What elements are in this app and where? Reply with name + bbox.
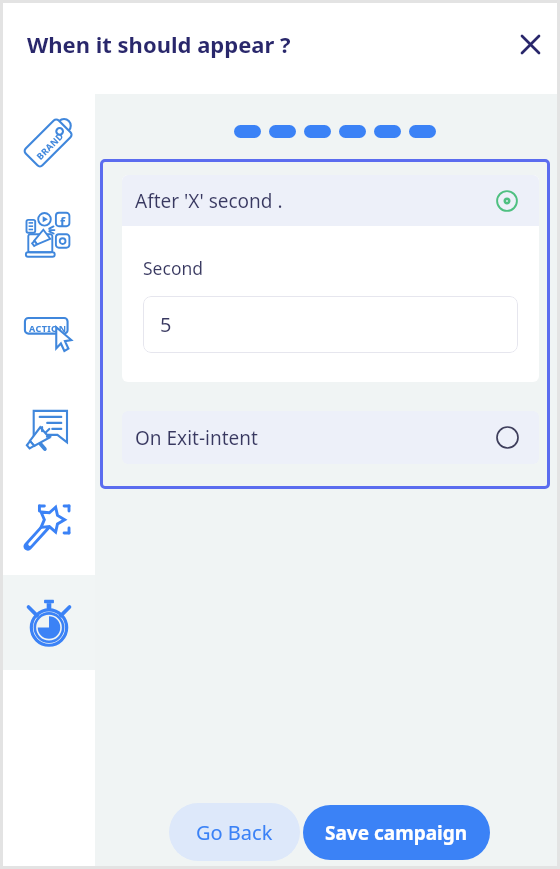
button[interactable]: Design bbox=[3, 479, 95, 575]
button[interactable]: After 'X' second . bbox=[122, 175, 539, 226]
button[interactable] bbox=[374, 125, 401, 138]
button[interactable]: Message bbox=[3, 383, 95, 479]
button[interactable]: Go Back bbox=[169, 803, 300, 861]
button[interactable] bbox=[339, 125, 366, 138]
button[interactable]: Close bbox=[511, 25, 549, 63]
staticText: Second bbox=[143, 256, 204, 280]
staticText: Go Back bbox=[196, 819, 273, 846]
staticText: ACTION bbox=[29, 322, 67, 334]
staticText: After 'X' second . bbox=[135, 188, 283, 214]
button[interactable] bbox=[234, 125, 261, 138]
button[interactable] bbox=[269, 125, 296, 138]
staticText: BRAND bbox=[33, 129, 66, 162]
button[interactable]: Timing bbox=[3, 575, 95, 670]
button[interactable]: 5 bbox=[143, 296, 518, 353]
button[interactable]: Save campaign bbox=[303, 805, 490, 860]
button[interactable]: On Exit-intent bbox=[122, 411, 539, 464]
staticText: On Exit-intent bbox=[135, 425, 258, 451]
staticText: Save campaign bbox=[325, 820, 468, 846]
button[interactable] bbox=[304, 125, 331, 138]
staticText: When it should appear ? bbox=[27, 29, 291, 59]
staticText: 5 bbox=[160, 311, 172, 338]
button[interactable]: Action bbox=[3, 285, 95, 383]
button[interactable]: Brand bbox=[3, 96, 95, 188]
staticText: f bbox=[60, 213, 66, 231]
button[interactable]: Campaign bbox=[3, 188, 95, 285]
button[interactable] bbox=[409, 125, 436, 138]
